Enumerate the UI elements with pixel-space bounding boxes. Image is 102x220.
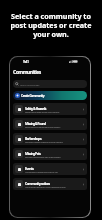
staticText: Missing & Found <box>25 121 46 125</box>
staticText: Missing Pets <box>25 151 41 155</box>
button[interactable]: Search <box>13 80 87 88</box>
button[interactable]: Community notices <box>13 178 87 190</box>
staticText: Discover trusted neighbourhood barbers <box>25 140 63 143</box>
staticText: Events <box>25 166 34 170</box>
staticText: Select a community to post updates or cr… <box>7 11 95 39</box>
staticText: 9:41 <box>23 59 29 64</box>
button[interactable]: Create Community <box>13 91 87 100</box>
staticText: Local events happening close to you <box>25 170 58 173</box>
button[interactable]: Safety & Hazards <box>13 103 87 115</box>
staticText: Community notices <box>25 181 50 185</box>
staticText: Safety & Hazards <box>25 106 47 110</box>
staticText: Announcements from your neighbourhood <box>25 185 66 188</box>
staticText: Search communities <box>20 83 40 86</box>
staticText: Reconnect lost items with their owners <box>25 125 61 128</box>
staticText: Create Community <box>21 94 45 98</box>
staticText: Report local safety issues and hazards <box>25 110 60 113</box>
staticText: Communities <box>13 69 41 76</box>
staticText: Reunite missing pets with their families <box>25 155 61 158</box>
staticText: Barbershops <box>25 136 42 140</box>
button[interactable]: Missing & Found <box>13 118 87 130</box>
other: Search <box>15 82 19 86</box>
button[interactable]: Events <box>13 163 87 175</box>
button[interactable]: Barbershops <box>13 133 87 145</box>
button[interactable]: Missing Pets <box>13 148 87 160</box>
